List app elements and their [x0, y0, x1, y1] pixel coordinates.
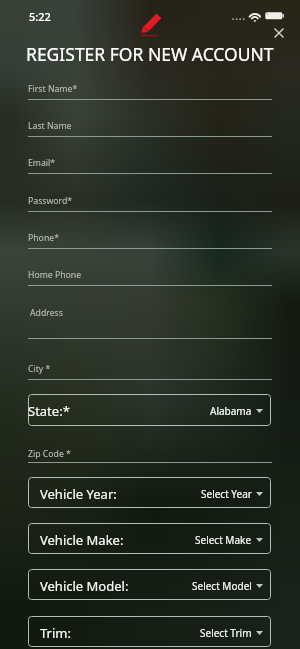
staticText: First Name*: [28, 83, 78, 95]
staticText: Select Model: [192, 579, 252, 593]
staticText: City *: [28, 363, 51, 375]
button[interactable]: Vehicle Make:: [28, 523, 271, 554]
staticText: Select Trim: [200, 626, 252, 640]
staticText: 5:22: [29, 9, 51, 24]
staticText: Zip Code *: [28, 448, 71, 460]
staticText: Last Name: [28, 120, 72, 132]
staticText: Select Make: [195, 533, 252, 547]
staticText: Select Year: [201, 487, 252, 501]
staticText: Password*: [28, 195, 73, 207]
staticText: Vehicle Model:: [40, 577, 129, 595]
button[interactable]: Trim:: [28, 616, 271, 647]
staticText: Alabama: [210, 404, 252, 418]
staticText: Phone*: [28, 232, 59, 244]
staticText: Address: [30, 307, 63, 319]
staticText: Vehicle Year:: [40, 485, 117, 503]
staticText: REGISTER FOR NEW ACCOUNT: [26, 42, 274, 61]
button[interactable]: Close: [268, 22, 289, 43]
staticText: State:*: [28, 402, 70, 420]
staticText: Vehicle Make:: [40, 531, 124, 549]
staticText: Trim:: [40, 624, 71, 642]
button[interactable]: Vehicle Model:: [28, 569, 271, 600]
button[interactable]: State:*: [28, 394, 271, 426]
staticText: Email*: [28, 157, 56, 169]
staticText: Home Phone: [28, 269, 82, 281]
button[interactable]: Vehicle Year:: [28, 477, 271, 508]
